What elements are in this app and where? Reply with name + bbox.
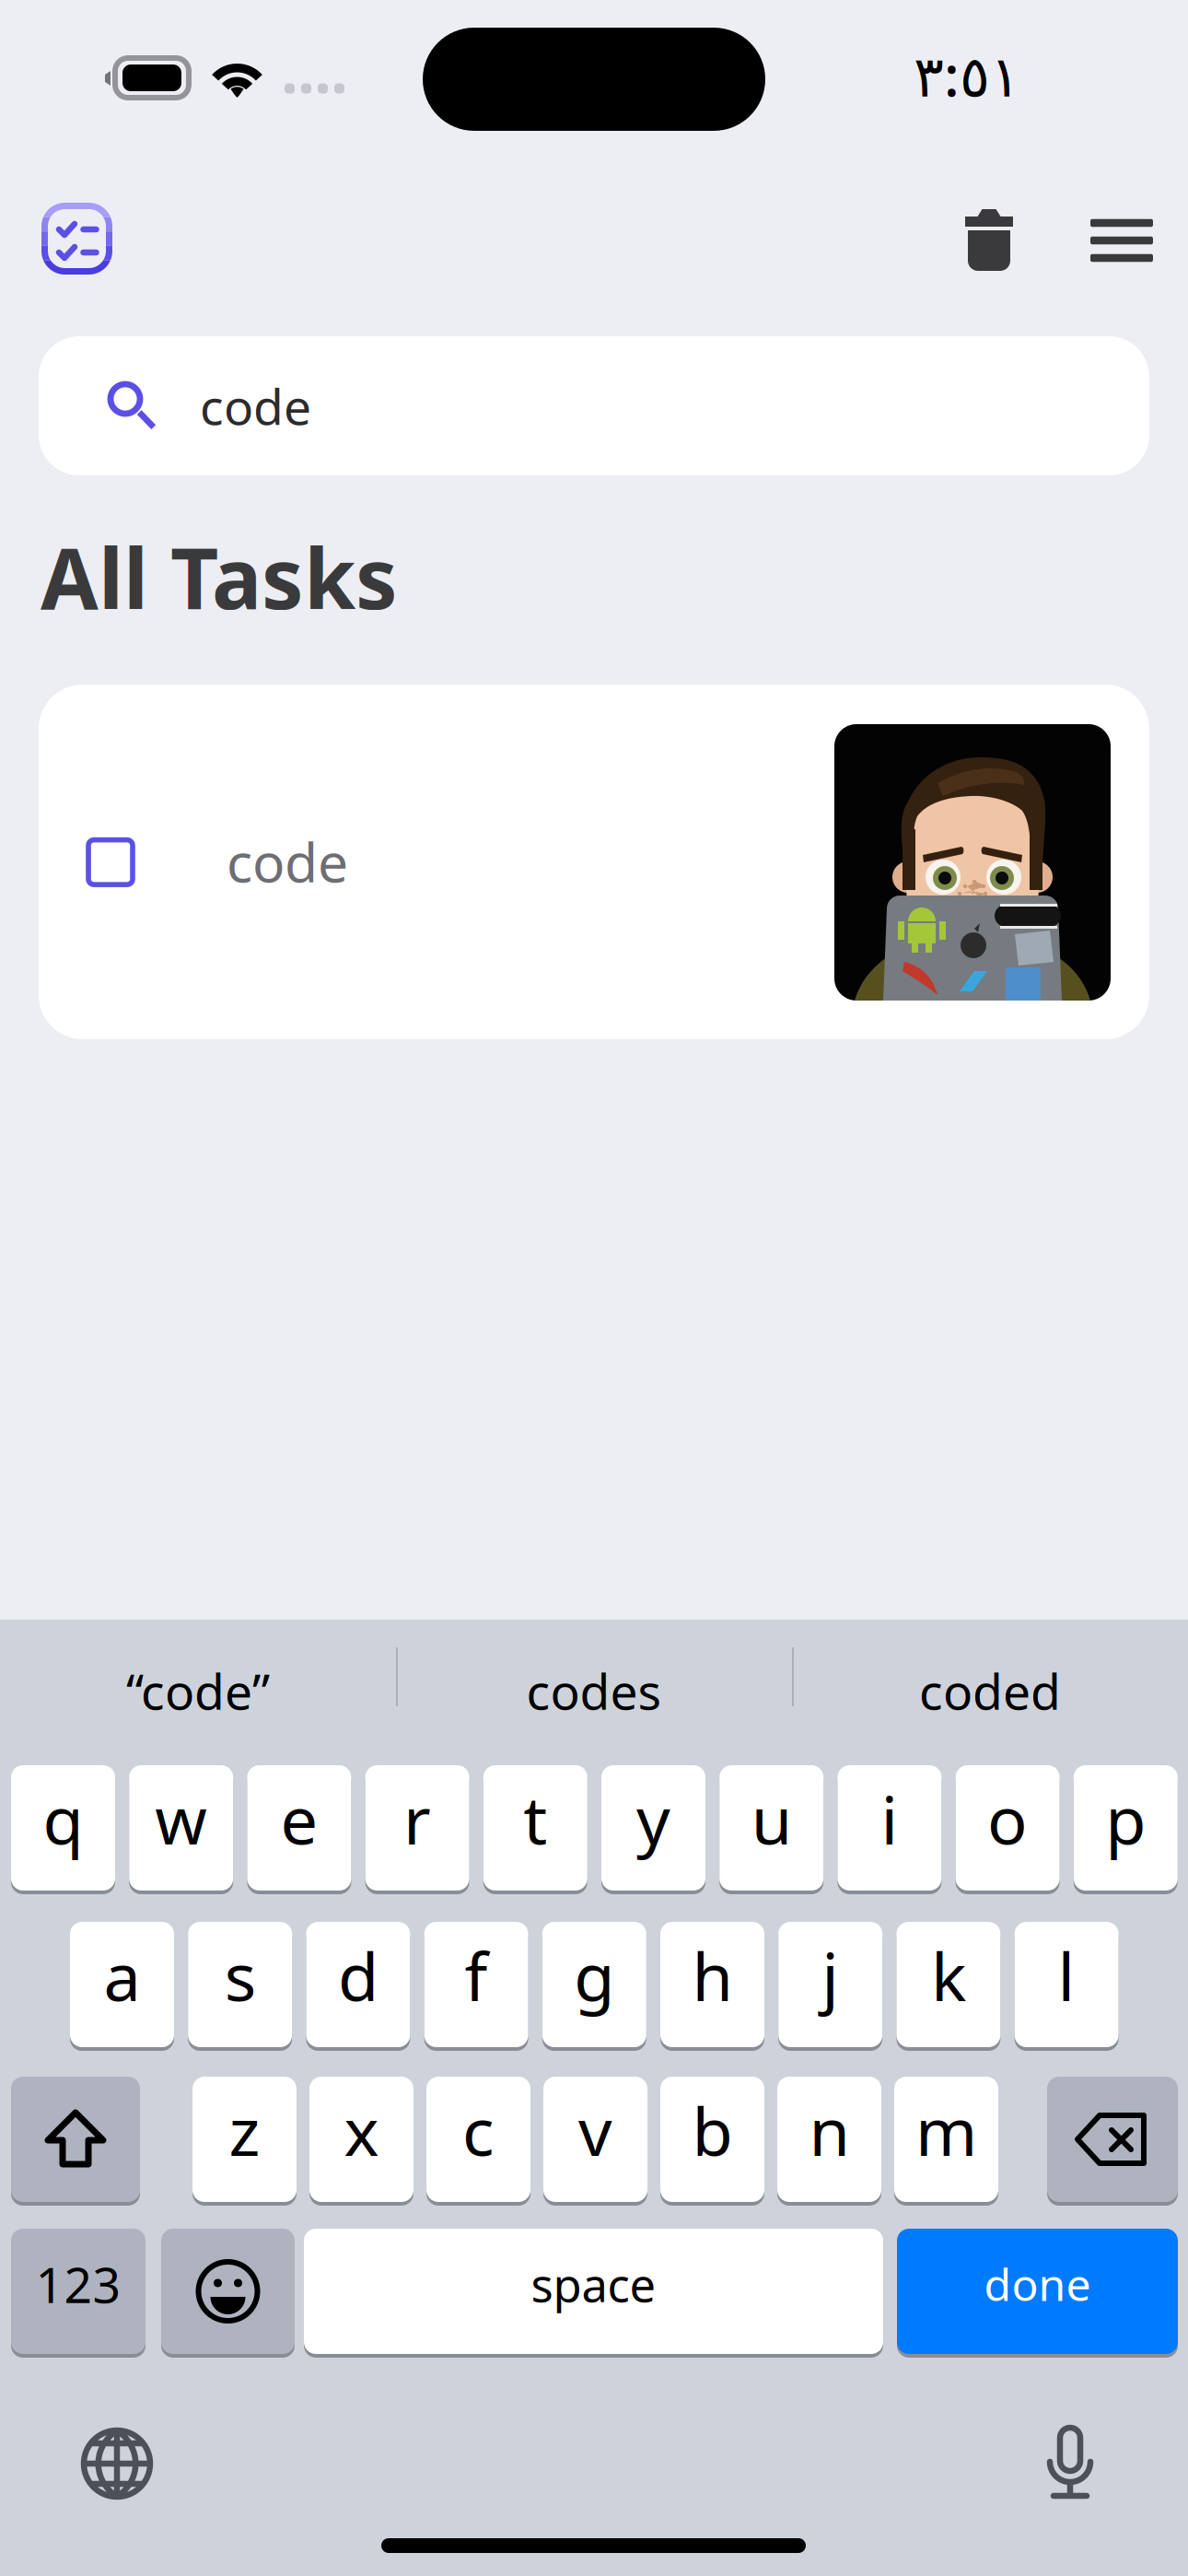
staticText: ٣:٥١ [914, 37, 1020, 112]
button[interactable]: x [309, 2073, 413, 2206]
button[interactable]: e [247, 1762, 351, 1894]
staticText: w [155, 1775, 207, 1863]
button[interactable]: l [1014, 1918, 1119, 2051]
staticText: code [200, 373, 311, 438]
staticText: c [462, 2086, 495, 2174]
button[interactable]: i [837, 1762, 942, 1894]
button[interactable]: j [778, 1918, 882, 2051]
button[interactable]: space [304, 2225, 883, 2358]
button[interactable]: q [11, 1762, 115, 1894]
button[interactable]: z [192, 2073, 297, 2206]
staticText: codes [526, 1658, 662, 1723]
button[interactable]: h [660, 1918, 764, 2051]
button[interactable]: t [483, 1762, 587, 1894]
staticText: y [636, 1775, 670, 1863]
button[interactable]: 123 [11, 2225, 146, 2358]
button[interactable]: Delete [1047, 2073, 1178, 2206]
staticText: space [531, 2253, 656, 2315]
staticText: g [574, 1931, 615, 2019]
button[interactable]: b [660, 2073, 764, 2206]
button[interactable]: v [543, 2073, 647, 2206]
staticText: k [931, 1931, 966, 2019]
staticText: f [465, 1931, 488, 2019]
button[interactable]: m [894, 2073, 998, 2206]
button[interactable]: Menu [1067, 186, 1176, 295]
staticText: v [578, 2086, 612, 2174]
button[interactable]: d [306, 1918, 410, 2051]
button[interactable]: Dictation [1019, 2416, 1121, 2508]
button[interactable]: Next keyboard [66, 2418, 168, 2510]
staticText: 123 [35, 2251, 121, 2317]
staticText: All Tasks [41, 521, 398, 632]
staticText: q [43, 1775, 83, 1863]
staticText: x [344, 2086, 379, 2174]
button[interactable]: o [956, 1762, 1060, 1894]
staticText: i [881, 1775, 898, 1863]
staticText: m [915, 2086, 977, 2174]
staticText: h [692, 1931, 733, 2019]
button[interactable]: coded [792, 1620, 1188, 1732]
staticText: r [403, 1775, 431, 1863]
button[interactable]: code [39, 336, 1149, 475]
staticText: d [338, 1931, 378, 2019]
staticText: done [984, 2255, 1091, 2313]
button[interactable]: Tasks [19, 184, 134, 293]
button[interactable]: s [188, 1918, 292, 2051]
staticText: a [104, 1931, 140, 2019]
button[interactable]: done [897, 2225, 1178, 2358]
staticText: e [280, 1775, 318, 1863]
button[interactable]: r [365, 1762, 469, 1894]
staticText: coded [919, 1658, 1061, 1723]
button[interactable]: u [719, 1762, 823, 1894]
button[interactable]: w [129, 1762, 233, 1894]
button[interactable]: “code” [0, 1620, 396, 1732]
staticText: l [1058, 1931, 1075, 2019]
button[interactable]: c [426, 2073, 530, 2206]
button[interactable]: n [777, 2073, 881, 2206]
button[interactable]: g [542, 1918, 646, 2051]
button[interactable]: codes [396, 1620, 792, 1732]
staticText: b [692, 2086, 733, 2174]
staticText: o [987, 1775, 1028, 1863]
button[interactable]: y [601, 1762, 705, 1894]
staticText: t [523, 1775, 547, 1863]
staticText: p [1105, 1775, 1146, 1863]
staticText: z [229, 2086, 260, 2174]
staticText: “code” [126, 1658, 270, 1723]
button[interactable]: Shift [11, 2073, 140, 2206]
button[interactable]: p [1074, 1762, 1178, 1894]
staticText: s [224, 1931, 256, 2019]
staticText: j [822, 1931, 839, 2019]
button[interactable]: code [39, 685, 1149, 1039]
button[interactable]: a [70, 1918, 174, 2051]
button[interactable]: f [424, 1918, 528, 2051]
staticText: n [809, 2086, 850, 2174]
button[interactable]: Delete [935, 185, 1043, 294]
staticText: code [227, 825, 348, 897]
staticText: u [751, 1775, 792, 1863]
button[interactable]: k [896, 1918, 1000, 2051]
button[interactable]: Emoji [161, 2225, 295, 2358]
